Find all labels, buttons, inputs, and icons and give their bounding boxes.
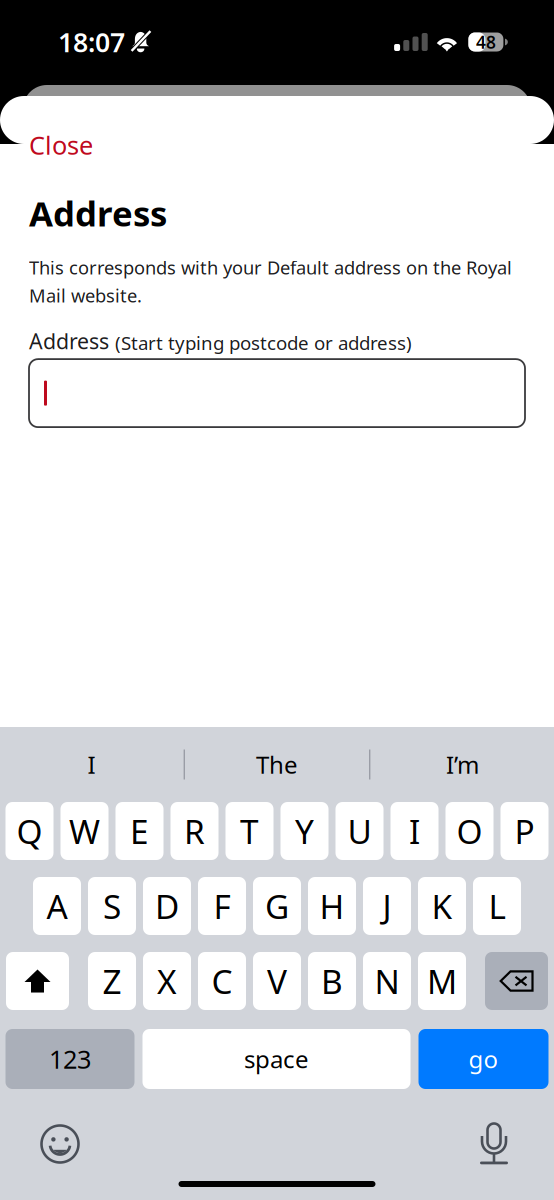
staticText: D (155, 884, 179, 928)
staticText: S (103, 884, 121, 928)
button[interactable]: X (143, 952, 191, 1010)
staticText: 48 (476, 30, 496, 53)
staticText: Q (16, 809, 42, 853)
button[interactable]: A (33, 877, 81, 935)
staticText: B (321, 959, 343, 1003)
staticText: J (382, 884, 391, 928)
button[interactable]: Q (5, 802, 53, 860)
staticText: R (184, 809, 205, 853)
button[interactable]: D (143, 877, 191, 935)
button[interactable]: P (500, 802, 548, 860)
button[interactable]: Emoji (37, 1121, 83, 1167)
staticText: (Start typing postcode or address) (115, 330, 412, 355)
button[interactable]: W (60, 802, 108, 860)
button[interactable]: O (445, 802, 493, 860)
staticText: C (211, 959, 232, 1003)
staticText: T (240, 809, 259, 853)
staticText: K (431, 884, 452, 928)
staticText: I’m (446, 749, 479, 780)
staticText: V (267, 959, 287, 1003)
button[interactable]: S (88, 877, 136, 935)
button[interactable]: M (418, 952, 466, 1010)
staticText: Mail website. (29, 283, 142, 308)
button[interactable]: Dictation (471, 1121, 517, 1167)
staticText: space (244, 1043, 309, 1075)
button[interactable]: Shift (6, 952, 69, 1010)
button[interactable]: G (253, 877, 301, 935)
staticText: Address (29, 327, 109, 355)
button[interactable]: U (335, 802, 383, 860)
button[interactable]: N (363, 952, 411, 1010)
button[interactable]: I (0, 727, 184, 802)
button[interactable]: E (115, 802, 163, 860)
staticText: F (213, 884, 230, 928)
staticText: A (46, 884, 67, 928)
button[interactable]: 123 (5, 1029, 134, 1089)
button[interactable]: Close (29, 130, 93, 160)
staticText: W (69, 809, 100, 853)
staticText: go (468, 1043, 498, 1075)
button[interactable]: V (253, 952, 301, 1010)
button[interactable]: R (170, 802, 218, 860)
staticText: G (265, 884, 289, 928)
staticText: Close (29, 128, 93, 162)
button[interactable]: C (198, 952, 246, 1010)
button[interactable]: J (363, 877, 411, 935)
staticText: This corresponds with your Default addre… (29, 255, 512, 280)
button[interactable]: Z (88, 952, 136, 1010)
button[interactable]: F (198, 877, 246, 935)
staticText: X (157, 959, 177, 1003)
staticText: P (514, 809, 534, 853)
button[interactable]: H (308, 877, 356, 935)
staticText: Y (295, 809, 314, 853)
button[interactable]: K (418, 877, 466, 935)
button[interactable]: Y (280, 802, 328, 860)
staticText: Z (102, 959, 121, 1003)
staticText: U (347, 809, 371, 853)
staticText: 123 (49, 1042, 91, 1076)
staticText: Address (29, 190, 167, 236)
button[interactable]: B (308, 952, 356, 1010)
button[interactable]: L (473, 877, 521, 935)
staticText: 18:07 (58, 24, 125, 60)
staticText: O (456, 809, 482, 853)
staticText: I (409, 809, 420, 853)
staticText: I (88, 749, 96, 780)
button[interactable]: Delete (485, 952, 548, 1010)
button[interactable]: go (418, 1029, 548, 1089)
staticText: M (427, 959, 457, 1003)
button[interactable]: I (390, 802, 438, 860)
button[interactable]: The (185, 727, 369, 802)
button[interactable]: T (225, 802, 273, 860)
staticText: E (130, 809, 149, 853)
staticText: H (319, 884, 344, 928)
button[interactable]: space (142, 1029, 410, 1089)
button[interactable]: I’m (370, 727, 554, 802)
staticText: L (488, 884, 505, 928)
staticText: The (256, 749, 298, 780)
staticText: N (374, 959, 399, 1003)
